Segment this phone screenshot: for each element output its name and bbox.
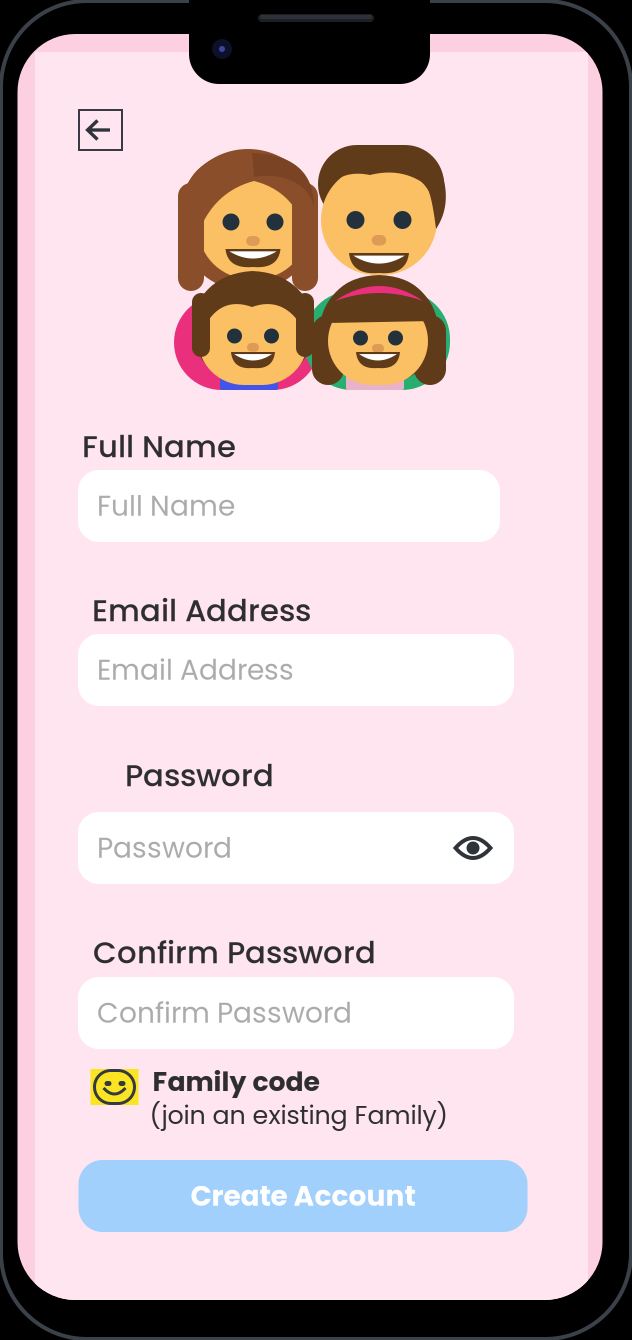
- button[interactable]: Back: [79, 110, 122, 150]
- staticText: Family code: [152, 1063, 319, 1100]
- staticText: Email Address: [97, 650, 294, 690]
- staticText: (join an existing Family): [149, 1097, 448, 1133]
- staticText: Create Account: [190, 1176, 415, 1216]
- button[interactable]: Family code: [90, 1063, 437, 1136]
- staticText: Password: [125, 754, 274, 797]
- staticText: Confirm Password: [97, 993, 352, 1033]
- button[interactable]: Password: [78, 812, 514, 884]
- staticText: Full Name: [82, 425, 236, 468]
- button[interactable]: Full Name: [78, 470, 500, 542]
- staticText: Confirm Password: [93, 931, 376, 974]
- button[interactable]: Create Account: [78, 1160, 527, 1232]
- button[interactable]: Confirm Password: [78, 977, 514, 1049]
- staticText: Full Name: [97, 486, 235, 526]
- staticText: Password: [97, 828, 232, 868]
- staticText: Email Address: [92, 589, 311, 632]
- button[interactable]: Email Address: [78, 634, 514, 706]
